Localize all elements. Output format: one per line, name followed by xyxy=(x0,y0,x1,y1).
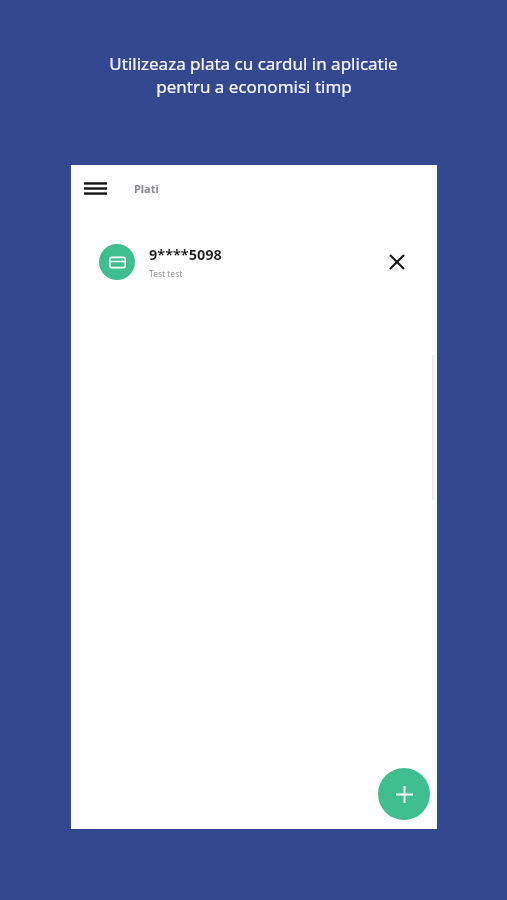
staticText: Test test xyxy=(149,268,183,280)
button[interactable]: Add payment card xyxy=(378,768,430,820)
staticText: Utilizeaza plata cu cardul in aplicatie xyxy=(109,52,398,75)
staticText: Plati xyxy=(134,181,159,196)
button[interactable]: Open navigation menu xyxy=(79,172,111,204)
staticText: pentru a economisi timp xyxy=(156,75,352,98)
staticText: 9****5098 xyxy=(149,244,222,264)
button[interactable]: 9****5098 xyxy=(88,232,420,291)
button[interactable]: Remove card xyxy=(382,247,412,277)
